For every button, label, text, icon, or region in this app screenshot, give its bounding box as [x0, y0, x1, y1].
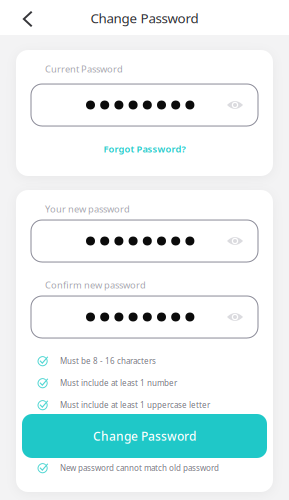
button[interactable]: Forgot Password? — [16, 138, 273, 160]
staticText: Current Password — [45, 63, 123, 75]
staticText: Forgot Password? — [103, 143, 185, 155]
staticText: Change Password — [93, 428, 196, 444]
staticText: New password cannot match old password — [60, 463, 219, 473]
staticText: Must include at least 1 number — [60, 378, 177, 388]
staticText: Your new password — [45, 203, 130, 215]
staticText: Confirm new password — [45, 279, 146, 291]
button[interactable]: Back — [0, 0, 44, 35]
staticText: Must be 8 - 16 characters — [60, 356, 156, 366]
staticText: Change Password — [90, 9, 198, 27]
button[interactable]: Change Password — [22, 414, 267, 458]
staticText: Must include at least 1 uppercase letter — [60, 400, 210, 410]
